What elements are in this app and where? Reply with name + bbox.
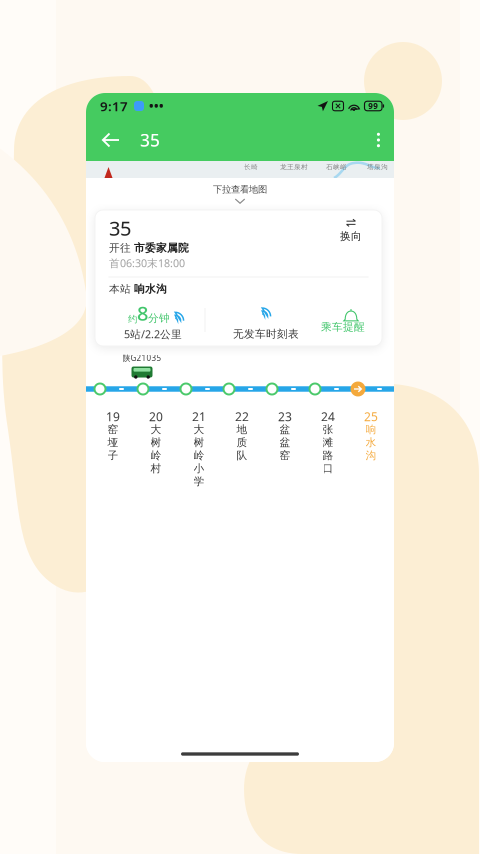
staticText: 响 (365, 423, 376, 436)
staticText: 35 (140, 128, 160, 151)
staticText: 树 (150, 436, 161, 449)
staticText: 20 (149, 408, 163, 424)
staticText: 分钟 (148, 312, 170, 325)
staticText: 沟 (365, 449, 376, 462)
staticText: 大 (193, 423, 204, 436)
staticText: 队 (236, 449, 247, 462)
staticText: 35 (109, 215, 131, 241)
staticText: 首06:30末18:00 (109, 256, 185, 270)
staticText: 子 (107, 449, 118, 462)
staticText: 窑 (279, 449, 290, 462)
staticText: 开往 (109, 241, 131, 254)
staticText: 质 (236, 436, 247, 449)
button[interactable]: 下拉查看地图 (86, 178, 394, 210)
staticText: 9:17 (100, 97, 128, 115)
staticText: 22 (235, 408, 249, 424)
staticText: 25 (364, 408, 378, 424)
button[interactable]: Back (86, 119, 132, 161)
staticText: 下拉查看地图 (213, 184, 267, 195)
staticText: 学 (193, 475, 204, 488)
staticText: 5站/2.2公里 (124, 327, 182, 341)
staticText: 响水沟 (134, 282, 167, 295)
staticText: 24 (321, 408, 335, 424)
staticText: 市委家属院 (134, 241, 189, 254)
staticText: 水 (365, 436, 376, 449)
staticText: 陕G21035 (122, 353, 161, 363)
button[interactable]: More options (363, 119, 394, 161)
staticText: 99 (368, 101, 378, 111)
staticText: 张 (322, 423, 333, 436)
staticText: ••• (149, 98, 164, 114)
staticText: 约 (128, 313, 137, 325)
staticText: 村 (150, 462, 161, 475)
staticText: 乘车提醒 (321, 320, 365, 333)
staticText: 口 (322, 462, 333, 475)
staticText: 盆 (279, 423, 290, 436)
staticText: 本站 (109, 282, 131, 295)
staticText: 19 (106, 408, 120, 424)
staticText: 树 (193, 436, 204, 449)
staticText: 路 (322, 449, 333, 462)
staticText: 小 (193, 462, 204, 475)
button[interactable]: 换向 (333, 212, 369, 250)
staticText: 岭 (150, 449, 161, 462)
button[interactable]: 乘车提醒 (311, 306, 375, 340)
staticText: 21 (192, 408, 206, 424)
staticText: 换向 (340, 230, 362, 243)
staticText: 窑 (107, 423, 118, 436)
staticText: 垭 (107, 436, 118, 449)
staticText: 地 (236, 423, 247, 436)
staticText: 滩 (322, 436, 333, 449)
staticText: 大 (150, 423, 161, 436)
staticText: 龙王泉村 (280, 163, 308, 171)
staticText: 盆 (279, 436, 290, 449)
staticText: 岭 (193, 449, 204, 462)
staticText: 23 (278, 408, 292, 424)
staticText: 8 (137, 300, 148, 326)
staticText: 无发车时刻表 (233, 327, 299, 340)
staticText: 长畸 (244, 163, 258, 171)
staticText: 塔泉沟 (367, 163, 388, 171)
staticText: 石峡峪 (326, 163, 347, 171)
